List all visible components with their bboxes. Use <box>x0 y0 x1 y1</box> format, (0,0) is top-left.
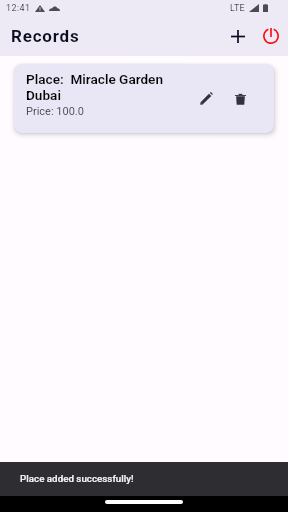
staticText: Place added successfully! <box>20 473 134 484</box>
staticText: LTE <box>230 3 246 14</box>
button[interactable]: Place added successfully! <box>0 462 288 496</box>
staticText: Records <box>11 26 80 46</box>
staticText: Place: Miracle Garden <box>26 71 164 87</box>
button[interactable]: Logout <box>255 20 287 52</box>
button[interactable]: Edit <box>193 85 220 112</box>
staticText: 12:41 <box>6 3 31 14</box>
button[interactable]: Delete <box>227 85 254 112</box>
button[interactable]: Place: Miracle Garden <box>14 64 274 133</box>
staticText: Price: 100.0 <box>26 105 84 118</box>
button[interactable]: Add record <box>222 20 254 52</box>
staticText: Dubai <box>26 87 61 103</box>
